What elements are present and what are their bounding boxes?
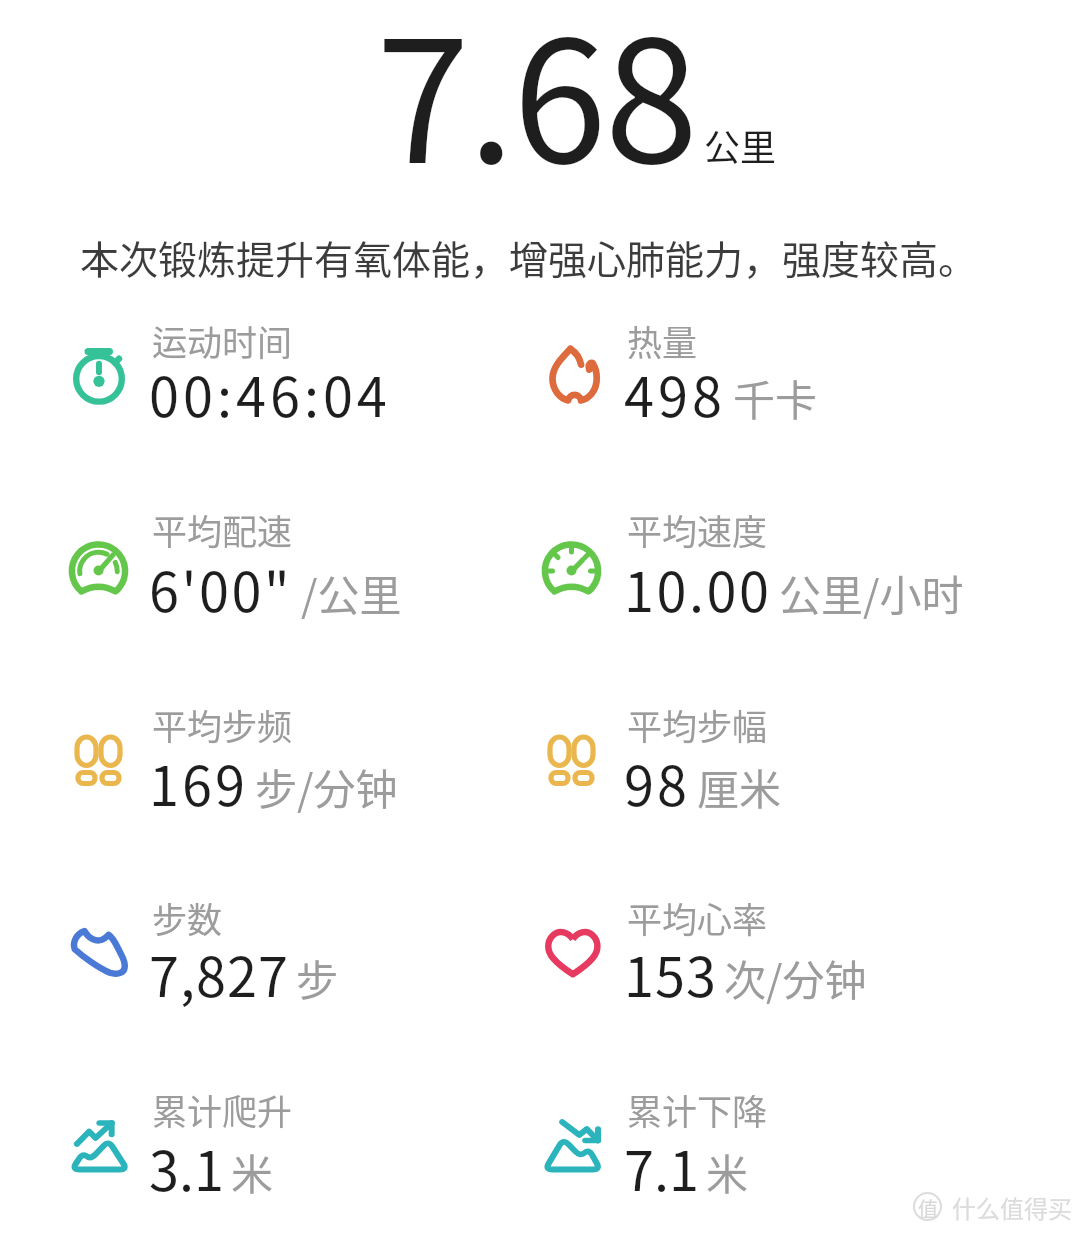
staticText: 平均步幅 bbox=[627, 699, 768, 750]
button[interactable]: 值 bbox=[908, 1185, 1028, 1220]
staticText: 值 bbox=[918, 1194, 938, 1223]
staticText: 步数 bbox=[152, 892, 223, 943]
staticText: 累计爬升 bbox=[152, 1084, 293, 1135]
staticText: 厘米 bbox=[697, 756, 782, 817]
staticText: 平均配速 bbox=[152, 504, 293, 555]
staticText: 153 bbox=[624, 934, 717, 1012]
staticText: 169 bbox=[149, 743, 248, 821]
staticText: 步 bbox=[296, 947, 339, 1008]
staticText: 本次锻炼提升有氧体能，增强心肺能力，强度较高。 bbox=[80, 229, 978, 285]
staticText: 什么值得买 bbox=[952, 1190, 1072, 1225]
staticText: 平均速度 bbox=[627, 504, 768, 555]
staticText: 10.00 bbox=[624, 549, 772, 627]
staticText: 平均心率 bbox=[627, 892, 768, 943]
staticText: 次/分钟 bbox=[724, 947, 867, 1008]
staticText: 7.1 bbox=[624, 1128, 699, 1206]
staticText: 98 bbox=[624, 743, 690, 821]
staticText: 米 bbox=[706, 1141, 749, 1202]
staticText: 公里/小时 bbox=[779, 562, 964, 623]
staticText: /公里 bbox=[301, 562, 402, 623]
staticText: 公里 bbox=[704, 119, 777, 171]
staticText: 3.1 bbox=[149, 1128, 224, 1206]
staticText: 累计下降 bbox=[627, 1084, 768, 1135]
staticText: 运动时间 bbox=[152, 315, 293, 366]
staticText: 7.68 bbox=[376, 0, 697, 212]
staticText: 498 bbox=[624, 354, 726, 432]
staticText: 米 bbox=[231, 1141, 274, 1202]
staticText: 00:46:04 bbox=[149, 354, 391, 432]
staticText: 6'00" bbox=[149, 549, 293, 627]
staticText: 平均步频 bbox=[152, 699, 293, 750]
staticText: 热量 bbox=[627, 315, 698, 366]
staticText: 步/分钟 bbox=[255, 756, 398, 817]
staticText: 7,827 bbox=[149, 934, 289, 1012]
staticText: 千卡 bbox=[733, 367, 818, 428]
